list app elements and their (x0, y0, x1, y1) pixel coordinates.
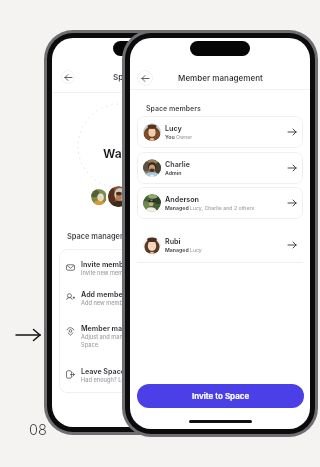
staticText: Add new members (81, 299, 132, 306)
staticText: Invite members (81, 260, 135, 269)
staticText: Member management (81, 324, 158, 333)
staticText: Space management (67, 232, 139, 241)
button[interactable]: Rubi (137, 229, 303, 261)
button[interactable]: Add members (59, 290, 225, 318)
staticText: Space members (146, 104, 201, 112)
staticText: Lucy (190, 247, 202, 253)
staticText: Admin (165, 170, 182, 176)
staticText: Space (113, 72, 138, 82)
staticText: Rubi (165, 237, 181, 246)
staticText: Watch party (103, 146, 176, 161)
button[interactable]: Back (61, 70, 75, 84)
staticText: You (165, 134, 175, 140)
staticText: 08 (29, 421, 47, 439)
staticText: Adjust and manage your Space. (81, 333, 147, 348)
staticText: Managed (165, 205, 189, 211)
staticText: Owner (176, 134, 193, 140)
staticText: Member management (178, 73, 263, 83)
button[interactable]: Charlie (137, 152, 303, 184)
staticText: Lucy (165, 124, 182, 133)
button[interactable]: Leave Space (59, 367, 225, 393)
button[interactable]: Invite members (59, 260, 225, 288)
staticText: Leave Space (81, 367, 126, 376)
button[interactable]: Lucy (137, 116, 303, 148)
staticText: Add members (81, 290, 130, 299)
staticText: Managed (165, 247, 189, 253)
staticText: Lucy, Charlie and 2 others (190, 205, 255, 211)
staticText: Anderson (165, 195, 200, 204)
button[interactable]: Member management (59, 324, 225, 352)
button[interactable]: Back (137, 70, 153, 86)
staticText: Charlie (165, 160, 190, 169)
staticText: Invite to Space (192, 391, 250, 401)
button[interactable]: Anderson (137, 187, 303, 219)
staticText: Invite new members (81, 269, 136, 276)
button[interactable]: Invite to Space (137, 384, 304, 408)
staticText: Had enough? Leave. (81, 376, 137, 383)
